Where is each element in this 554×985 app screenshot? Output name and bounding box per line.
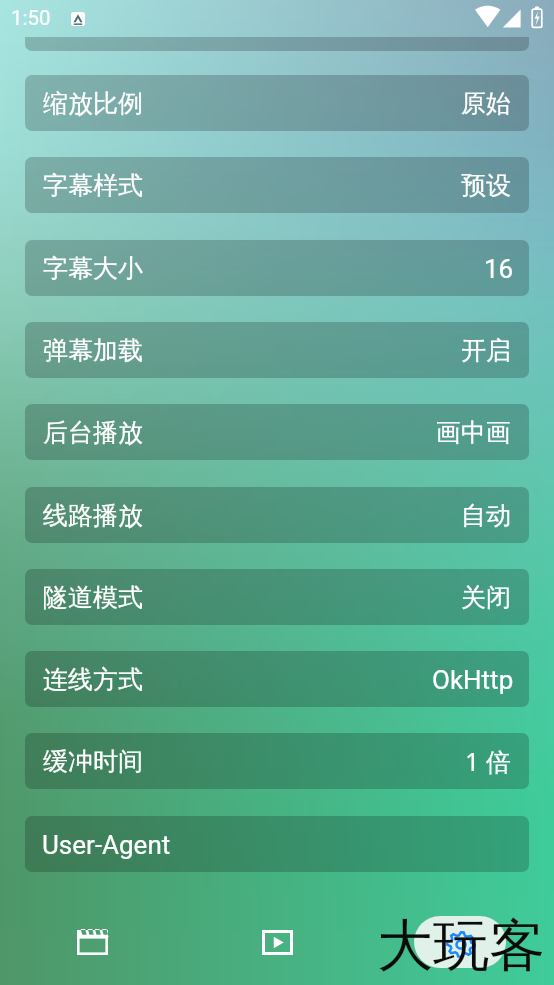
staticText: 自动 [461, 500, 511, 531]
staticText: 16 [484, 254, 514, 284]
staticText: 字幕大小 [43, 253, 143, 284]
button[interactable]: Movies [0, 898, 184, 985]
staticText: 关闭 [461, 582, 511, 613]
staticText: 连线方式 [43, 664, 143, 695]
button[interactable]: 字幕样式 [25, 157, 529, 213]
staticText: 1 倍 [465, 744, 511, 778]
staticText: 缩放比例 [43, 88, 143, 119]
button[interactable]: Settings [369, 898, 554, 985]
staticText: 大玩客 [377, 911, 545, 982]
staticText: 隧道模式 [43, 582, 143, 613]
button[interactable]: 弹幕加载 [25, 322, 529, 378]
other: Notification [71, 12, 85, 26]
button[interactable]: 连线方式 [25, 651, 529, 707]
button[interactable]: Videos [184, 898, 369, 985]
staticText: 原始 [461, 88, 511, 119]
staticText: OkHttp [432, 665, 514, 695]
staticText: 画中画 [436, 417, 511, 448]
staticText: 线路播放 [43, 500, 143, 531]
staticText: 后台播放 [43, 417, 143, 448]
button[interactable]: 字幕大小 [25, 240, 529, 296]
button[interactable]: 线路播放 [25, 487, 529, 543]
staticText: 开启 [461, 335, 511, 366]
staticText: 1:50 [11, 6, 51, 30]
button[interactable]: 缩放比例 [25, 75, 529, 131]
staticText: 预设 [461, 170, 511, 201]
staticText: User-Agent [42, 830, 171, 860]
staticText: 弹幕加载 [43, 335, 143, 366]
button[interactable]: 缓冲时间 [25, 733, 529, 789]
button[interactable]: User-Agent [25, 816, 529, 872]
button[interactable]: 后台播放 [25, 404, 529, 460]
staticText: 缓冲时间 [43, 746, 143, 777]
button[interactable]: 隧道模式 [25, 569, 529, 625]
staticText: 字幕样式 [43, 170, 143, 201]
